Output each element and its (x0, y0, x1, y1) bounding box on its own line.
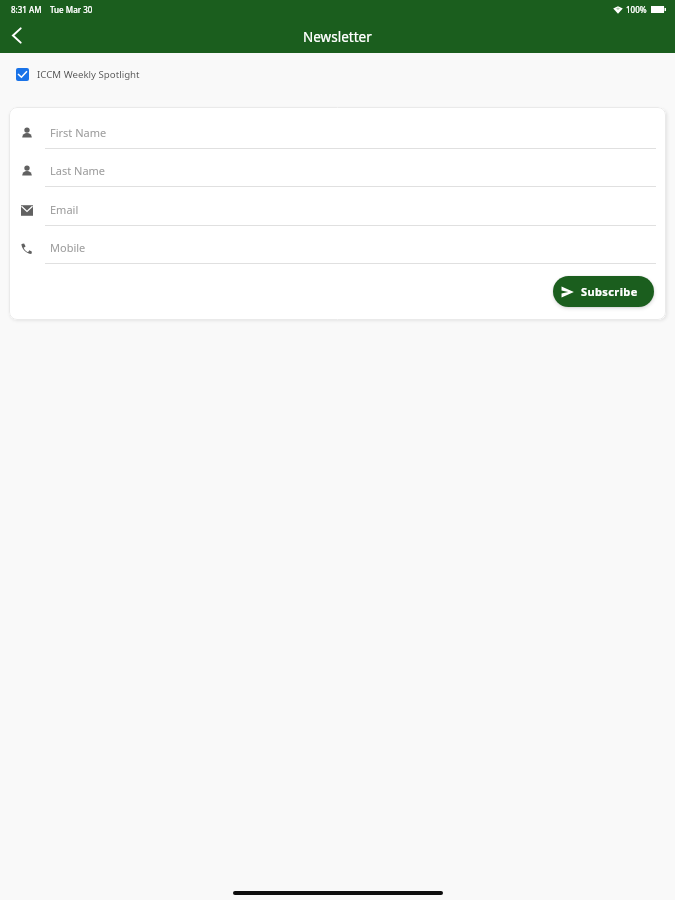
staticText: 8:31 AM (11, 4, 42, 15)
button[interactable]: Subscribe (553, 276, 654, 307)
staticText: ICCM Weekly Spotlight (37, 68, 140, 81)
button[interactable]: Email (9, 192, 666, 226)
staticText: Newsletter (303, 28, 372, 46)
button[interactable]: ICCM Weekly Spotlight (0, 53, 675, 96)
staticText: Tue Mar 30 (50, 4, 93, 15)
staticText: Mobile (50, 240, 86, 255)
staticText: First Name (50, 125, 107, 140)
staticText: Last Name (50, 163, 106, 178)
button[interactable]: Back (3, 24, 29, 50)
button[interactable]: Mobile (9, 230, 666, 264)
staticText: 100% (626, 4, 647, 15)
button[interactable]: Last Name (9, 153, 666, 187)
staticText: Email (50, 202, 79, 217)
button[interactable]: First Name (9, 115, 666, 149)
staticText: Subscribe (581, 284, 638, 299)
